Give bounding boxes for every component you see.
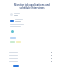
staticText: Monitor job applications and schedule in… [0, 3, 64, 10]
